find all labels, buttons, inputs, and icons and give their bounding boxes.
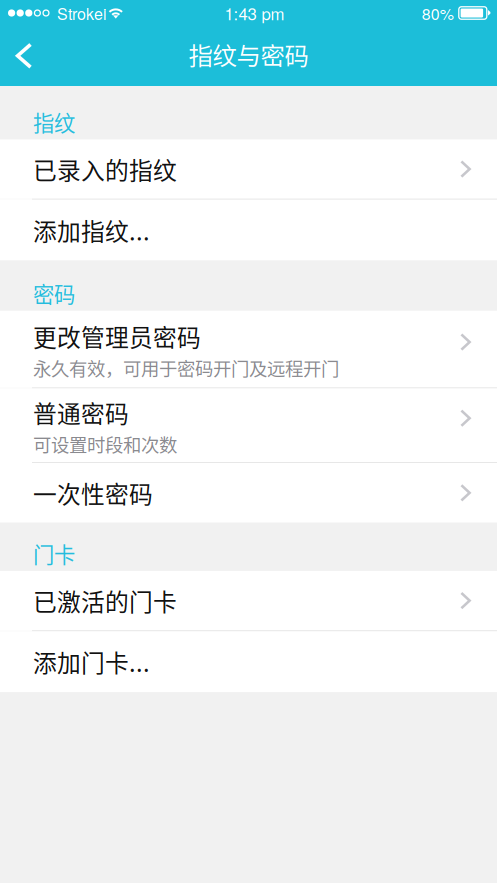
button[interactable]: 添加指纹... bbox=[0, 200, 497, 260]
staticText: 添加门卡... bbox=[33, 644, 150, 679]
button[interactable]: Back bbox=[0, 26, 48, 86]
button[interactable]: 一次性密码 bbox=[0, 463, 497, 523]
staticText: 指纹 bbox=[33, 106, 75, 137]
staticText: 普通密码 bbox=[33, 395, 129, 430]
button[interactable]: 更改管理员密码 bbox=[0, 311, 497, 387]
staticText: 密码 bbox=[33, 278, 75, 309]
staticText: 添加指纹... bbox=[33, 213, 150, 247]
staticText: 可设置时段和次数 bbox=[33, 431, 177, 457]
staticText: 指纹与密码 bbox=[188, 36, 308, 72]
button[interactable]: 已录入的指纹 bbox=[0, 139, 497, 199]
staticText: 永久有效，可用于密码开门及远程开门 bbox=[33, 354, 339, 381]
staticText: 已录入的指纹 bbox=[33, 152, 177, 186]
staticText: 已激活的门卡 bbox=[33, 583, 177, 618]
staticText: 1:43 pm bbox=[224, 1, 284, 25]
button[interactable]: 添加门卡... bbox=[0, 631, 497, 692]
staticText: 80% bbox=[422, 1, 454, 24]
staticText: 一次性密码 bbox=[33, 476, 153, 510]
staticText: Strokei bbox=[57, 1, 107, 24]
staticText: 更改管理员密码 bbox=[33, 319, 201, 353]
button[interactable]: 已激活的门卡 bbox=[0, 571, 497, 630]
staticText: 门卡 bbox=[33, 538, 75, 569]
button[interactable]: 普通密码 bbox=[0, 388, 497, 462]
